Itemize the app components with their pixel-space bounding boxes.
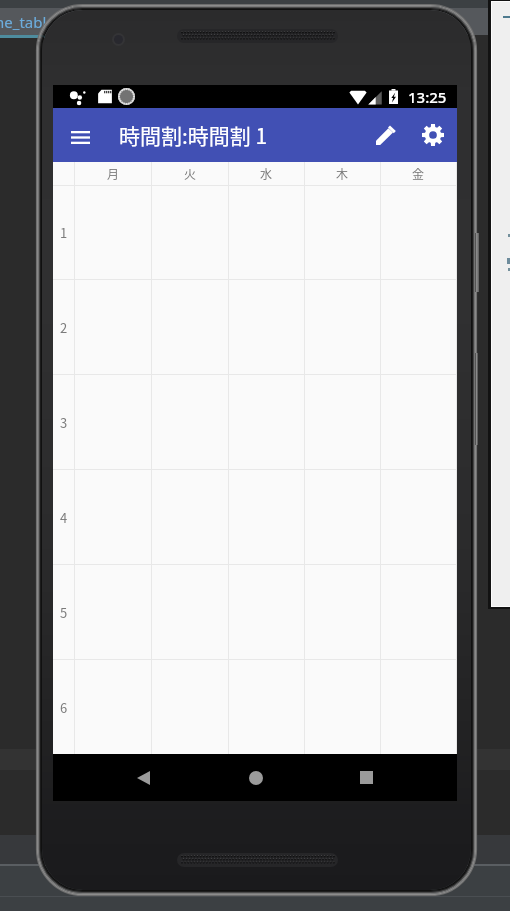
button[interactable]: Recent apps: [338, 754, 395, 801]
staticText: 水: [260, 165, 273, 182]
staticText: 金: [412, 165, 425, 182]
staticText: 5: [60, 603, 68, 622]
staticText: 3: [60, 413, 68, 432]
button[interactable]: Settings: [409, 108, 457, 162]
button[interactable]: Home: [227, 754, 284, 801]
staticText: 4: [60, 508, 68, 527]
staticText: 時間割:時間割 1: [119, 120, 268, 150]
staticText: 木: [336, 165, 349, 182]
button[interactable]: Back: [115, 754, 172, 801]
staticText: ne_tabl: [0, 12, 47, 32]
staticText: 13:25: [408, 87, 447, 107]
button[interactable]: Menu: [53, 108, 107, 162]
staticText: 1: [60, 223, 68, 242]
staticText: 2: [60, 318, 68, 337]
staticText: 火: [184, 165, 197, 182]
button[interactable]: Edit: [363, 108, 409, 162]
staticText: 月: [107, 165, 120, 182]
staticText: 6: [60, 698, 68, 717]
